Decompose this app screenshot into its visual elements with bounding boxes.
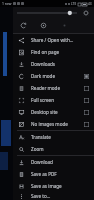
staticText: Translate: [31, 134, 89, 140]
button[interactable]: New tab: [38, 20, 49, 31]
staticText: Dark mode: [31, 73, 84, 79]
button[interactable]: Refresh: [18, 20, 29, 31]
staticText: Downloads: [31, 61, 89, 67]
button[interactable]: Save as image: [13, 180, 94, 192]
button[interactable]: Brightness: [81, 8, 90, 17]
staticText: 43: [88, 2, 92, 6]
staticText: Download: [31, 159, 89, 165]
button[interactable]: No images mode: [13, 118, 94, 130]
button[interactable]: Full screen: [13, 94, 94, 106]
button[interactable]: Zoom: [13, 143, 94, 155]
staticText: Reader mode: [31, 85, 84, 91]
button[interactable]: Share / Open with…: [13, 34, 94, 46]
staticText: No images mode: [31, 121, 84, 127]
button[interactable]: Download: [13, 156, 94, 168]
staticText: Zoom: [31, 146, 89, 152]
staticText: Save as PDF: [31, 171, 89, 177]
staticText: Find on page: [31, 49, 89, 55]
button[interactable]: Save to…: [13, 192, 94, 200]
button[interactable]: Reader mode: [13, 82, 94, 94]
button[interactable]: Desktop site: [13, 106, 94, 118]
button[interactable]: Downloads: [13, 58, 94, 70]
staticText: LTE: [71, 2, 77, 6]
button[interactable]: Bookmark: [59, 20, 70, 31]
button[interactable]: Translate: [13, 131, 94, 143]
staticText: Full screen: [31, 97, 84, 103]
staticText: Save as image: [31, 183, 89, 189]
button[interactable]: Find on page: [13, 46, 94, 58]
staticText: Save to…: [31, 193, 89, 199]
button[interactable]: Dark mode: [13, 70, 94, 82]
staticText: 1 new: [2, 1, 12, 6]
staticText: Desktop site: [31, 109, 84, 115]
staticText: Share / Open with…: [31, 37, 89, 43]
button[interactable]: Save as PDF: [13, 168, 94, 180]
